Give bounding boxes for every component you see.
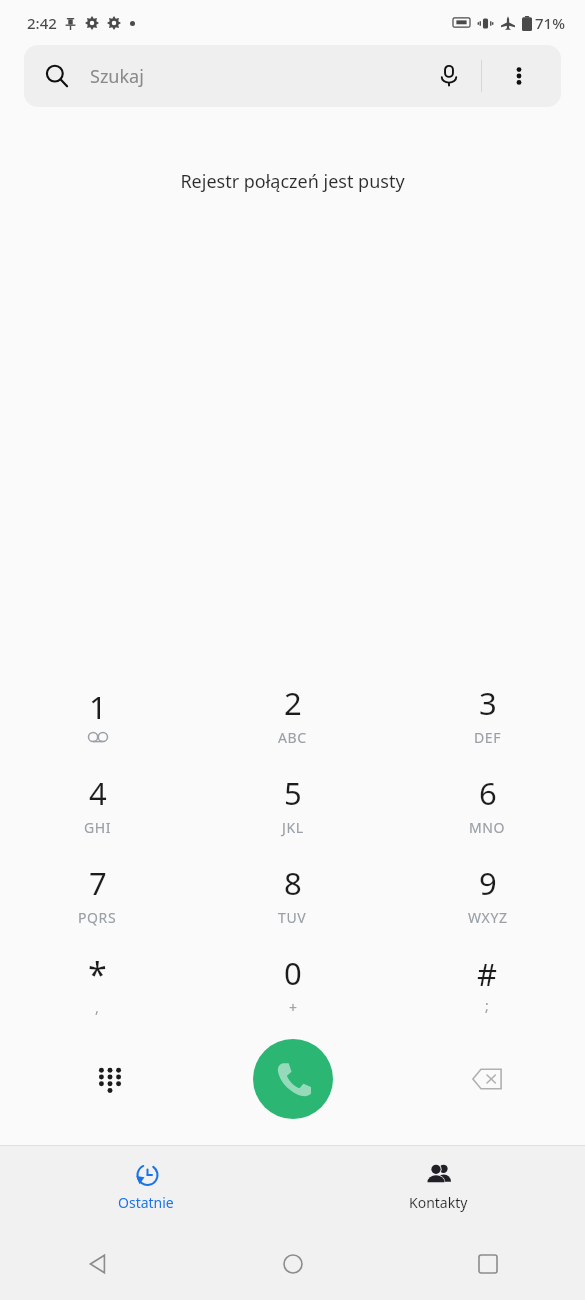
staticText: DEF	[474, 728, 502, 747]
staticText: 4	[89, 772, 107, 814]
staticText: 9	[479, 862, 497, 904]
staticText: 71%	[535, 13, 565, 33]
button[interactable]: 5	[195, 759, 390, 849]
button[interactable]: Szukaj	[24, 45, 561, 107]
button[interactable]: 6	[390, 759, 585, 849]
staticText: JKL	[282, 818, 304, 837]
staticText: 7	[89, 862, 107, 904]
button[interactable]: #	[390, 939, 585, 1029]
button[interactable]: Voice search	[427, 54, 471, 98]
staticText: 2	[284, 682, 302, 724]
staticText: 8	[284, 862, 302, 904]
button[interactable]: Ostatnie	[0, 1146, 292, 1228]
staticText: Ostatnie	[118, 1193, 174, 1212]
button[interactable]: Back	[0, 1228, 195, 1300]
staticText: TUV	[278, 908, 307, 927]
staticText: Szukaj	[90, 64, 144, 89]
button[interactable]: Backspace	[461, 1053, 513, 1105]
button[interactable]: Home	[195, 1228, 390, 1300]
staticText: GHI	[84, 818, 112, 837]
staticText: MNO	[469, 818, 506, 837]
staticText: 6	[479, 772, 497, 814]
staticText: 3	[479, 682, 497, 724]
button[interactable]: 7	[0, 849, 195, 939]
staticText: ,	[95, 998, 100, 1017]
staticText: Rejestr połączeń jest pusty	[0, 169, 585, 194]
staticText: ;	[485, 996, 490, 1015]
button[interactable]: 0	[195, 939, 390, 1029]
staticText: 0	[284, 952, 302, 994]
staticText: PQRS	[78, 908, 117, 927]
staticText: 2:42	[27, 13, 57, 33]
button[interactable]: *	[0, 939, 195, 1029]
button[interactable]: 2	[195, 669, 390, 759]
staticText: 5	[284, 772, 302, 814]
button[interactable]: 8	[195, 849, 390, 939]
staticText: *	[88, 951, 107, 997]
staticText: 1	[89, 686, 107, 728]
staticText: Kontakty	[409, 1193, 468, 1212]
button[interactable]: Keypad	[84, 1053, 136, 1105]
button[interactable]: 9	[390, 849, 585, 939]
staticText: +	[289, 998, 298, 1017]
staticText: WXYZ	[468, 908, 508, 927]
staticText: ABC	[278, 728, 307, 747]
button[interactable]: Call	[253, 1039, 333, 1119]
button[interactable]: Recents	[390, 1228, 585, 1300]
button[interactable]: 4	[0, 759, 195, 849]
button[interactable]: Kontakty	[292, 1146, 585, 1228]
button[interactable]: 1	[0, 669, 195, 759]
button[interactable]: 3	[390, 669, 585, 759]
staticText: #	[477, 953, 498, 995]
button[interactable]: More options	[499, 56, 539, 96]
